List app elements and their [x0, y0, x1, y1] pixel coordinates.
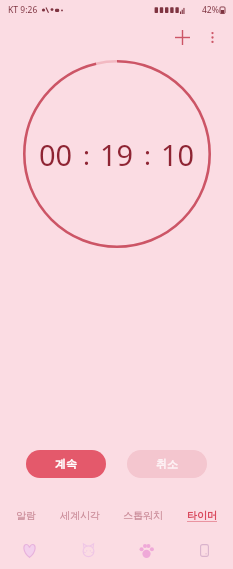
staticText: 계속: [55, 457, 77, 471]
staticText: 00: [39, 135, 73, 174]
button[interactable]: 세계시각: [54, 506, 106, 525]
button[interactable]: Paw: [117, 535, 175, 565]
staticText: 타이머: [187, 509, 217, 522]
button[interactable]: Add timer: [167, 22, 197, 52]
staticText: 세계시각: [60, 509, 100, 522]
staticText: KT 9:26: [8, 4, 38, 16]
staticText: :: [83, 137, 90, 172]
staticText: 10: [161, 135, 195, 174]
staticText: 19: [100, 135, 134, 174]
button[interactable]: 알람: [10, 506, 42, 525]
button[interactable]: More options: [197, 22, 227, 52]
staticText: 취소: [156, 457, 178, 471]
button[interactable]: 스톱워치: [117, 506, 169, 525]
button[interactable]: 타이머: [181, 506, 223, 525]
staticText: 42%: [202, 4, 219, 16]
button[interactable]: Favorites: [0, 535, 59, 565]
button[interactable]: 취소: [127, 450, 207, 478]
button[interactable]: Pet: [59, 535, 117, 565]
button[interactable]: 계속: [26, 450, 106, 478]
button[interactable]: Device: [175, 535, 233, 565]
staticText: 알람: [16, 509, 36, 522]
staticText: 스톱워치: [123, 509, 163, 522]
staticText: :: [144, 137, 151, 172]
